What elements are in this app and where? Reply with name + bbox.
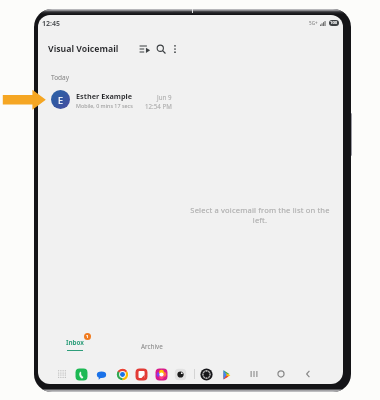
staticText: Esther Example <box>76 91 133 101</box>
staticText: Inbox <box>66 338 84 347</box>
staticText: Today <box>51 73 70 82</box>
staticText: 12:54 PM <box>145 102 172 110</box>
button[interactable]: Phone <box>72 365 90 383</box>
button[interactable]: Archive <box>125 333 179 357</box>
staticText: Mobile, 0 mins 17 secs <box>76 102 133 109</box>
button[interactable]: Inbox <box>56 333 110 357</box>
button[interactable]: Chrome <box>113 365 131 383</box>
button[interactable]: More options <box>167 41 183 57</box>
button[interactable]: Home <box>272 365 290 383</box>
staticText: Select a voicemail from the list on the … <box>190 205 330 225</box>
staticText: 12:45 <box>42 19 60 29</box>
staticText: Visual Voicemail <box>48 43 119 55</box>
staticText: E <box>58 94 64 106</box>
button[interactable]: Search <box>153 41 169 57</box>
staticText: 100 <box>330 20 338 26</box>
button[interactable]: Gmail <box>132 365 150 383</box>
button[interactable]: Camera <box>171 365 189 383</box>
button[interactable]: Messages <box>92 365 110 383</box>
button[interactable]: Play all <box>137 41 153 57</box>
staticText: Archive <box>141 342 163 351</box>
button[interactable]: Settings <box>197 365 215 383</box>
staticText: Jun 9 <box>157 93 172 101</box>
button[interactable]: All apps <box>56 368 68 380</box>
button[interactable]: Recents <box>245 365 263 383</box>
button[interactable]: Back <box>299 365 317 383</box>
button[interactable]: E <box>38 86 186 113</box>
staticText: 5G+ <box>309 20 318 26</box>
button[interactable]: Play Store <box>217 365 235 383</box>
staticText: 1 <box>86 334 89 340</box>
button[interactable]: Photos <box>152 365 170 383</box>
